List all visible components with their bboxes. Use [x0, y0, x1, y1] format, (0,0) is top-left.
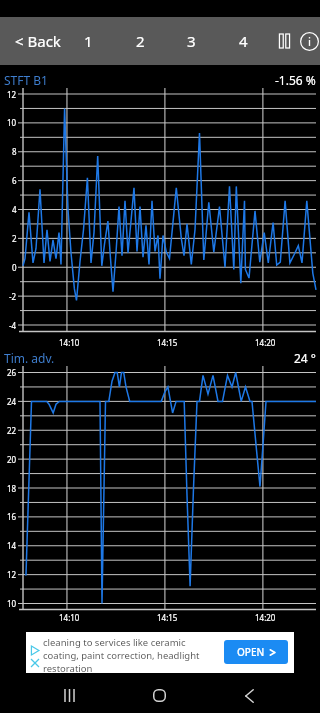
button[interactable]: 2 — [118, 17, 162, 65]
staticText: 14:10 — [59, 612, 80, 623]
staticText: STFT B1 — [4, 72, 48, 86]
button[interactable]: Pause — [268, 17, 300, 65]
staticText: 0 — [12, 262, 17, 273]
button[interactable]: < Back — [4, 17, 72, 65]
button[interactable]: Info — [296, 17, 320, 65]
staticText: restoration — [43, 662, 93, 675]
button[interactable]: cleaning to services like ceramic — [26, 632, 294, 673]
button[interactable]: Home — [128, 676, 190, 713]
staticText: cleaning to services like ceramic — [43, 636, 186, 649]
staticText: < Back — [15, 31, 61, 51]
staticText: 2 — [136, 31, 145, 51]
staticText: 18 — [7, 483, 17, 494]
staticText: -1.56 % — [275, 72, 316, 86]
staticText: 12 — [7, 89, 17, 100]
staticText: coating, paint correction, headlight — [43, 649, 200, 662]
staticText: OPEN — [237, 645, 265, 659]
staticText: 12 — [7, 569, 17, 580]
staticText: 6 — [12, 175, 17, 186]
staticText: 14 — [7, 540, 17, 551]
staticText: 14:15 — [157, 337, 178, 348]
staticText: 4 — [239, 31, 248, 51]
staticText: 4 — [12, 204, 17, 215]
staticText: 24 — [7, 396, 17, 407]
button[interactable]: Recent apps — [38, 676, 100, 713]
staticText: 22 — [7, 425, 17, 436]
staticText: 14:15 — [157, 612, 178, 623]
staticText: 14:20 — [255, 337, 276, 348]
staticText: 24 ° — [294, 350, 316, 364]
staticText: 14:20 — [255, 612, 276, 623]
staticText: 2 — [12, 233, 17, 244]
button[interactable]: 4 — [221, 17, 265, 65]
staticText: 14:10 — [59, 337, 80, 348]
staticText: 20 — [7, 454, 17, 465]
button[interactable]: Back — [218, 676, 280, 713]
staticText: 10 — [7, 117, 17, 128]
staticText: 1 — [84, 31, 93, 51]
staticText: 16 — [7, 511, 17, 522]
button[interactable]: OPEN — [224, 640, 288, 664]
staticText: 8 — [12, 146, 17, 157]
button[interactable]: 3 — [169, 17, 213, 65]
staticText: -4 — [9, 320, 17, 331]
staticText: Tim. adv. — [4, 350, 55, 364]
staticText: 26 — [7, 367, 17, 378]
button[interactable]: 1 — [66, 17, 110, 65]
staticText: -2 — [9, 291, 17, 302]
staticText: 10 — [7, 598, 17, 609]
staticText: 3 — [187, 31, 196, 51]
